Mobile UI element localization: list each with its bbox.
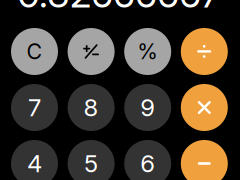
button[interactable]: 4 xyxy=(11,140,58,180)
button[interactable]: 6 xyxy=(124,140,171,180)
button[interactable]: % xyxy=(124,28,171,75)
staticText: 7 xyxy=(28,93,41,122)
button[interactable]: Plus minus xyxy=(68,28,115,75)
button[interactable]: Divide xyxy=(181,28,228,75)
button[interactable]: C xyxy=(11,28,58,75)
staticText: 0.32666667 xyxy=(17,0,221,17)
staticText: 5 xyxy=(84,149,98,178)
button[interactable]: 9 xyxy=(124,84,171,131)
button[interactable]: Multiply xyxy=(181,84,228,131)
button[interactable]: 5 xyxy=(68,140,115,180)
staticText: % xyxy=(137,39,158,64)
button[interactable]: 7 xyxy=(11,84,58,131)
button[interactable]: 8 xyxy=(68,84,115,131)
staticText: 4 xyxy=(27,149,42,178)
staticText: 9 xyxy=(140,93,155,122)
staticText: C xyxy=(26,39,42,64)
staticText: 6 xyxy=(140,149,155,178)
staticText: 8 xyxy=(84,93,99,122)
button[interactable]: Minus xyxy=(181,140,228,180)
